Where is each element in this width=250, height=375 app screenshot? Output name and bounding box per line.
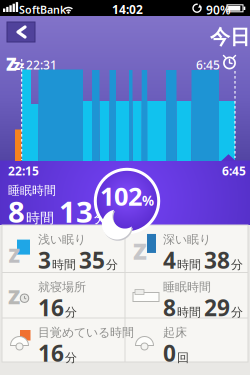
button[interactable]: Back: [7, 22, 35, 42]
staticText: %: [142, 192, 154, 209]
staticText: 35: [79, 245, 105, 275]
staticText: 8: [163, 292, 176, 323]
staticText: 6:45: [222, 163, 246, 179]
staticText: 睡眠時間: [163, 279, 211, 295]
staticText: 29: [204, 292, 230, 323]
staticText: Z: [8, 243, 19, 268]
staticText: Z: [133, 236, 147, 266]
staticText: 4: [163, 245, 176, 275]
staticText: z: [13, 56, 20, 74]
staticText: SoftBank: [19, 2, 66, 17]
staticText: 浅い眠り: [38, 232, 86, 247]
staticText: 0: [163, 338, 176, 368]
staticText: 6:45: [196, 57, 220, 73]
staticText: 分: [106, 257, 118, 272]
staticText: 分: [231, 305, 243, 320]
staticText: 分: [65, 305, 77, 320]
staticText: 今日: [210, 24, 250, 50]
staticText: 14:02: [112, 1, 143, 17]
staticText: 回: [177, 350, 189, 365]
staticText: 就寝場所: [38, 279, 86, 295]
staticText: 目覚めている時間: [38, 325, 134, 340]
staticText: 時間: [52, 257, 76, 272]
staticText: 22:15: [8, 163, 39, 179]
staticText: 22:31: [26, 57, 57, 73]
staticText: 16: [38, 292, 64, 323]
staticText: 分: [231, 257, 243, 272]
staticText: z: [19, 58, 24, 71]
staticText: 起床: [163, 325, 187, 340]
staticText: 時間: [177, 305, 201, 320]
staticText: 90%: [206, 2, 231, 18]
staticText: 分: [94, 209, 108, 227]
staticText: 時間: [177, 257, 201, 272]
staticText: 睡眠時間: [8, 183, 56, 198]
staticText: Z: [6, 52, 17, 75]
staticText: 3: [38, 245, 51, 275]
staticText: 38: [204, 245, 230, 275]
staticText: 時間: [26, 209, 54, 227]
staticText: 16: [38, 338, 64, 368]
staticText: 8: [8, 192, 25, 231]
staticText: 102: [100, 179, 142, 213]
staticText: 分: [65, 350, 77, 365]
staticText: Z: [8, 283, 20, 310]
staticText: 深い眠り: [163, 232, 211, 247]
staticText: 13: [59, 192, 93, 231]
